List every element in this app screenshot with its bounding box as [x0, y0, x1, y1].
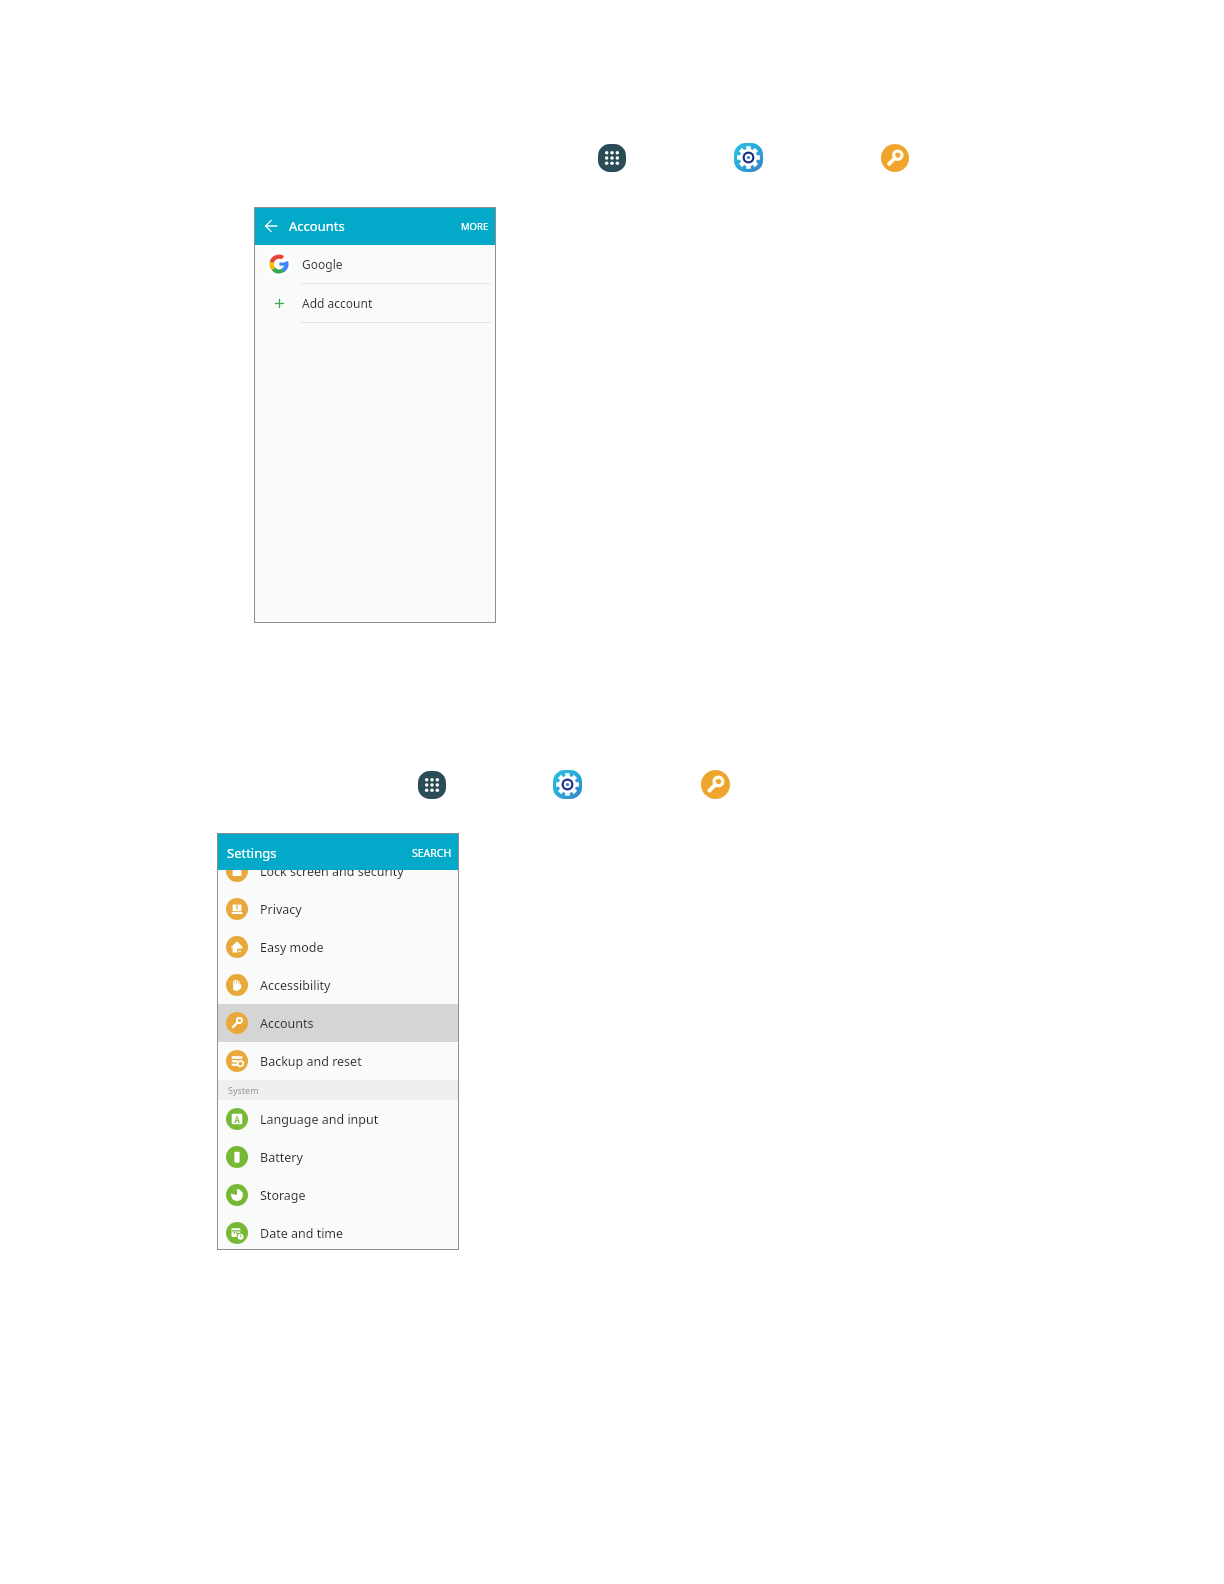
button[interactable]: Back — [254, 209, 288, 243]
button[interactable]: SEARCH — [405, 833, 459, 870]
button[interactable]: Settings — [553, 770, 582, 799]
button[interactable]: Settings — [734, 143, 763, 172]
button[interactable]: Accounts — [217, 1004, 459, 1042]
button[interactable]: MORE — [454, 207, 496, 245]
staticText: Battery — [260, 1149, 303, 1166]
button[interactable]: Backup and reset — [217, 1042, 459, 1080]
staticText: Easy mode — [260, 939, 324, 956]
staticText: Accounts — [260, 1015, 314, 1032]
staticText: Accounts — [289, 217, 345, 235]
button[interactable]: Storage — [217, 1176, 459, 1214]
button[interactable]: Google — [254, 245, 496, 284]
button[interactable]: Accounts — [701, 770, 730, 799]
button[interactable]: Add account — [254, 284, 496, 323]
staticText: Date and time — [260, 1225, 344, 1242]
staticText: Backup and reset — [260, 1053, 362, 1070]
staticText: MORE — [461, 220, 489, 233]
button[interactable]: Lock screen and security — [217, 852, 459, 890]
staticText: Lock screen and security — [260, 863, 404, 880]
button[interactable]: Privacy — [217, 890, 459, 928]
button[interactable]: Date and time — [217, 1214, 459, 1252]
staticText: Google — [302, 256, 343, 272]
button[interactable]: Apps — [598, 144, 626, 172]
staticText: Add account — [302, 295, 373, 311]
staticText: Accessibility — [260, 977, 331, 994]
button[interactable]: Battery — [217, 1138, 459, 1176]
button[interactable]: Apps — [418, 771, 446, 799]
button[interactable]: Accounts — [881, 144, 909, 172]
button[interactable]: Accessibility — [217, 966, 459, 1004]
staticText: System — [228, 1084, 259, 1096]
staticText: Settings — [227, 844, 277, 862]
staticText: Privacy — [260, 901, 302, 918]
button[interactable]: Language and input — [217, 1100, 459, 1138]
staticText: Storage — [260, 1187, 306, 1204]
button[interactable]: Easy mode — [217, 928, 459, 966]
staticText: SEARCH — [412, 846, 452, 860]
staticText: Language and input — [260, 1111, 379, 1128]
